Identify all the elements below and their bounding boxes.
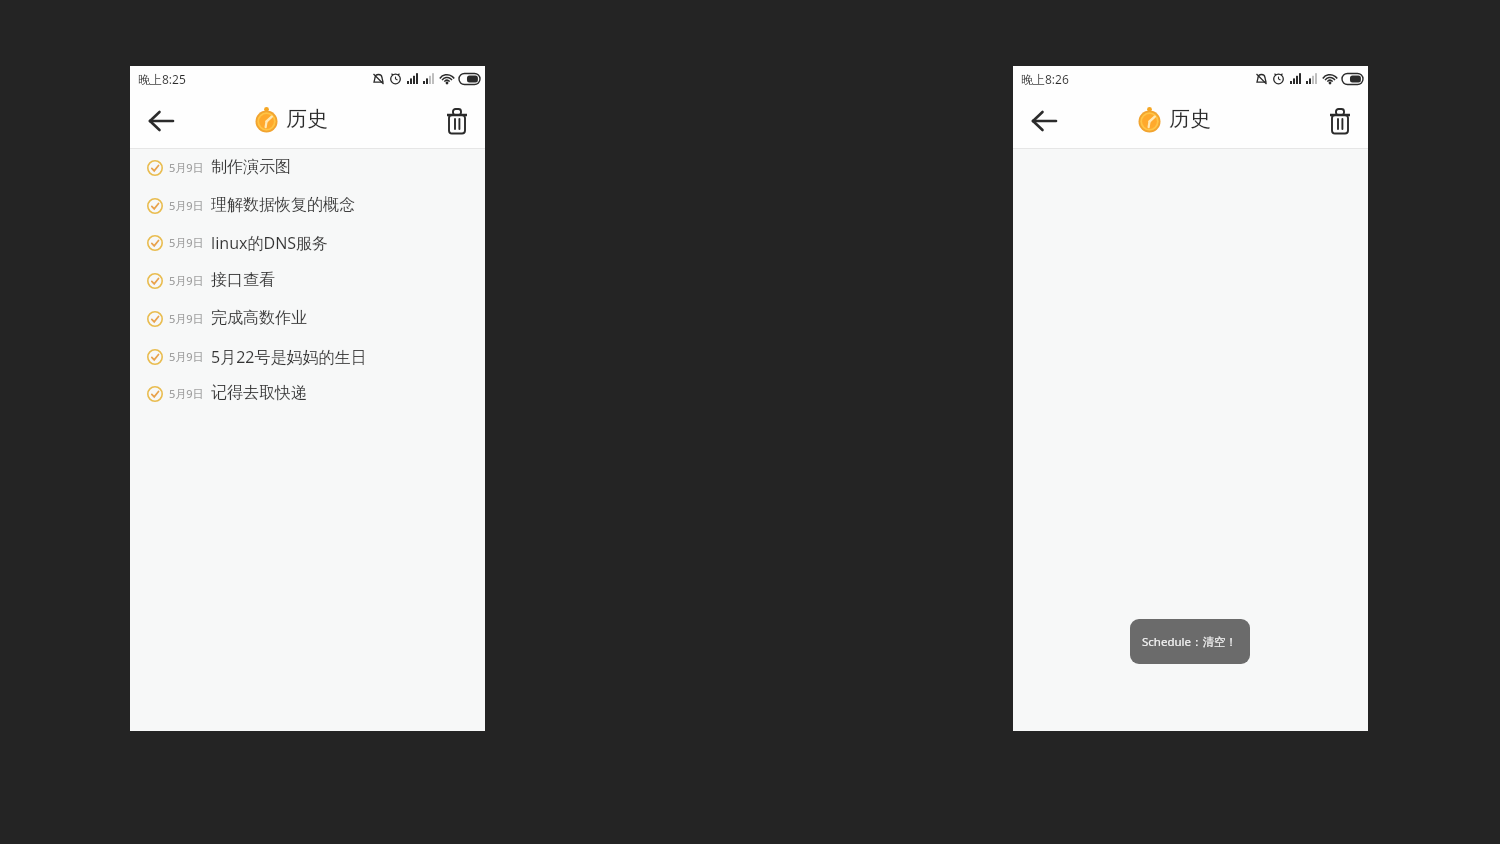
staticText: 完成高数作业 xyxy=(211,308,307,328)
button[interactable] xyxy=(1027,104,1061,138)
button[interactable]: 5月9日 xyxy=(130,187,485,225)
button[interactable] xyxy=(1323,104,1357,138)
staticText: 晚上8:26 xyxy=(1021,71,1069,87)
button[interactable]: 5月9日 xyxy=(130,300,485,338)
staticText: 制作演示图 xyxy=(211,157,291,177)
staticText: 5月9日 xyxy=(169,198,204,213)
staticText: 5月9日 xyxy=(169,386,204,401)
staticText: 理解数据恢复的概念 xyxy=(211,195,355,215)
staticText: 历史 xyxy=(1169,106,1211,132)
button[interactable]: 5月9日 xyxy=(130,375,485,413)
staticText: 5月9日 xyxy=(169,235,204,250)
button[interactable] xyxy=(440,104,474,138)
staticText: 5月9日 xyxy=(169,160,204,175)
button[interactable]: 5月9日 xyxy=(130,338,485,376)
staticText: 晚上8:25 xyxy=(138,71,186,87)
staticText: linux的DNS服务 xyxy=(211,232,329,254)
staticText: 接口查看 xyxy=(211,270,275,290)
staticText: 5月9日 xyxy=(169,311,204,326)
staticText: Schedule：清空！ xyxy=(1142,634,1238,650)
button[interactable]: 5月9日 xyxy=(130,149,485,187)
button[interactable]: 5月9日 xyxy=(130,262,485,300)
button[interactable]: 5月9日 xyxy=(130,224,485,262)
staticText: 历史 xyxy=(286,106,328,132)
staticText: 5月22号是妈妈的生日 xyxy=(211,346,367,368)
staticText: 5月9日 xyxy=(169,273,204,288)
staticText: 记得去取快递 xyxy=(211,383,307,403)
staticText: 5月9日 xyxy=(169,349,204,364)
button[interactable] xyxy=(144,104,178,138)
